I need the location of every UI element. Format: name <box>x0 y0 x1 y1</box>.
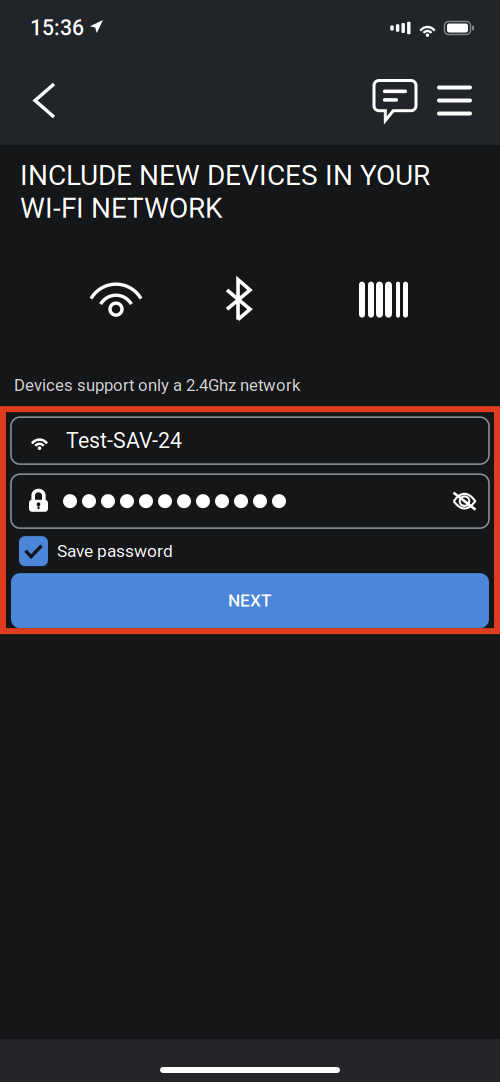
staticText: Test-SAV-24 <box>66 428 182 453</box>
staticText: NEXT <box>228 590 272 611</box>
button[interactable]: NEXT <box>11 573 489 628</box>
button[interactable]: Show password <box>453 481 489 522</box>
staticText: Devices support only a 2.4Ghz network <box>14 376 300 395</box>
staticText: 15:36 <box>30 15 84 40</box>
button[interactable]: Messages <box>368 72 422 128</box>
staticText: Save password <box>57 541 173 561</box>
button[interactable]: Back <box>0 71 72 130</box>
button[interactable]: Menu <box>422 73 500 127</box>
staticText: WI-FI NETWORK <box>20 192 223 225</box>
staticText: INCLUDE NEW DEVICES IN YOUR <box>20 159 430 192</box>
button[interactable]: Save password <box>11 536 173 566</box>
